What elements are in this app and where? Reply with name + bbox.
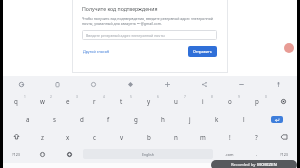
button[interactable]: . [243,145,270,163]
button[interactable] [243,128,270,145]
staticText: 0 [265,95,267,99]
button[interactable] [135,128,162,145]
staticText: ?123 [280,152,288,157]
button[interactable]: Backspace [270,128,297,145]
button[interactable]: Emoji [75,76,112,92]
staticText: Recorded by [231,162,257,168]
staticText: 2 [50,95,52,99]
staticText: 3 [76,95,78,99]
staticText: y [147,97,151,105]
button[interactable]: Emoji [29,145,56,163]
staticText: s [53,115,56,123]
button[interactable]: Shift [3,128,29,145]
button[interactable]: ?123 [270,145,297,163]
staticText: t [120,97,123,105]
button[interactable] [189,128,216,145]
button[interactable] [29,92,55,110]
staticText: 5 [130,95,132,99]
staticText: Чтобы получить код подтверждения, введит… [82,16,217,26]
button[interactable] [189,92,216,110]
staticText: i [202,97,204,105]
staticText: k [215,115,219,123]
button[interactable]: Google search [3,76,39,92]
button[interactable] [81,92,108,110]
staticText: Другой способ [83,49,110,54]
button[interactable] [149,110,176,128]
button[interactable] [108,128,135,145]
button[interactable] [95,110,122,128]
button[interactable]: Voice input [260,76,297,92]
button[interactable] [55,128,81,145]
button[interactable] [243,92,270,110]
staticText: . [256,151,258,157]
staticText: x [66,133,70,141]
button[interactable]: .com [216,145,243,163]
staticText: r [93,97,96,105]
staticText: English [142,152,154,157]
staticText: e [66,97,70,105]
button[interactable] [135,92,162,110]
button[interactable] [162,128,189,145]
button[interactable]: Enter [257,110,297,128]
button[interactable]: Введите резервный адрес электронной почт… [82,30,217,40]
button[interactable] [176,110,203,128]
staticText: d [80,115,84,123]
staticText: j [189,115,191,123]
button[interactable] [3,92,29,110]
staticText: .com [225,152,234,157]
staticText: Отправить [193,49,212,54]
staticText: f [107,115,110,123]
button[interactable] [15,110,41,128]
staticText: 1 [24,95,26,99]
staticText: ?123 [12,152,20,157]
button[interactable] [216,92,243,110]
staticText: m [200,133,206,141]
button[interactable] [162,92,189,110]
staticText: b [147,133,151,141]
staticText: v [120,133,124,141]
staticText: 6 [157,95,159,99]
staticText: a [26,115,30,123]
staticText: 4 [103,95,105,99]
staticText: n [174,133,178,141]
staticText: u [174,97,178,105]
button[interactable] [41,110,68,128]
staticText: MOBIZEN [257,162,277,168]
button[interactable] [216,128,243,145]
button[interactable]: Share [186,76,223,92]
staticText: q [14,97,18,105]
button[interactable] [108,92,135,110]
button[interactable]: ?123 [3,145,29,163]
button[interactable]: Translate [149,76,186,92]
button[interactable] [230,110,257,128]
staticText: Введите резервный адрес электронной почт… [86,33,165,38]
button[interactable] [68,110,95,128]
button[interactable]: Другой способ [82,47,111,56]
button[interactable] [29,128,55,145]
button[interactable]: Отправить [188,46,217,57]
staticText: c [93,133,96,141]
staticText: 8 [211,95,213,99]
staticText: l [243,115,245,123]
button[interactable]: Clipboard [39,76,75,92]
staticText: w [40,97,45,105]
button[interactable]: Voice typing [270,92,297,110]
staticText: ! [229,133,231,141]
button[interactable]: Theme [223,76,260,92]
button[interactable] [81,128,108,145]
staticText: z [41,133,44,141]
staticText: Получите код подтверждения [82,5,158,12]
button[interactable] [55,92,81,110]
staticText: h [161,115,165,123]
staticText: 9 [238,95,240,99]
staticText: o [228,97,232,105]
button[interactable]: Settings [56,145,83,163]
button[interactable]: Notification [284,43,294,53]
staticText: ? [255,133,258,141]
button[interactable]: English [83,149,213,159]
button[interactable] [122,110,149,128]
staticText: p [255,97,259,105]
button[interactable]: Stickers [112,76,149,92]
button[interactable] [203,110,230,128]
staticText: g [134,115,138,123]
